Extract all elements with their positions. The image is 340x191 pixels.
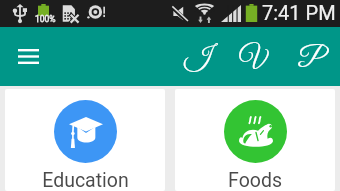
button[interactable]: Open navigation drawer: [8, 27, 48, 86]
staticText: I: [184, 42, 210, 77]
staticText: 100%: [35, 14, 56, 24]
staticText: 7:41 PM: [262, 1, 336, 24]
button[interactable]: Action V: [232, 27, 274, 86]
staticText: P: [298, 42, 324, 77]
staticText: V: [239, 42, 267, 77]
button[interactable]: Foods: [175, 89, 335, 191]
staticText: Foods: [228, 169, 282, 191]
button[interactable]: Action P: [290, 27, 332, 86]
staticText: Education: [42, 169, 129, 191]
button[interactable]: Education: [5, 89, 165, 191]
button[interactable]: Action I: [176, 27, 218, 86]
